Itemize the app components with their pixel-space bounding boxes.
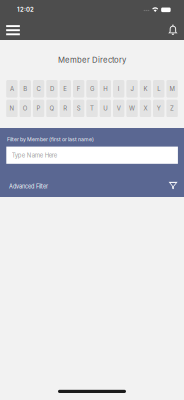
staticText: D [50, 85, 54, 92]
button[interactable]: E [60, 80, 71, 98]
button[interactable]: J [126, 80, 138, 98]
staticText: M [170, 85, 175, 92]
button[interactable]: I [113, 80, 124, 98]
staticText: X [143, 105, 147, 112]
staticText: Advanced Filter [9, 183, 48, 190]
button[interactable]: R [60, 100, 71, 117]
staticText: V [117, 105, 121, 112]
button[interactable]: Y [153, 100, 164, 117]
button[interactable]: Notifications [164, 21, 182, 39]
button[interactable]: O [19, 100, 31, 117]
button[interactable]: F [73, 80, 84, 98]
staticText: G [90, 85, 94, 92]
button[interactable]: X [140, 100, 151, 117]
staticText: W [129, 105, 135, 112]
staticText: O [23, 105, 28, 112]
button[interactable]: U [100, 100, 111, 117]
button[interactable]: T [86, 100, 98, 117]
button[interactable]: D [46, 80, 58, 98]
staticText: T [90, 105, 94, 112]
button[interactable]: L [153, 80, 164, 98]
staticText: R [63, 105, 67, 112]
staticText: H [103, 85, 107, 92]
staticText: K [143, 85, 147, 92]
staticText: L [157, 85, 160, 92]
staticText: 12:02 [17, 6, 34, 13]
staticText: N [9, 105, 14, 112]
staticText: A [10, 85, 14, 92]
staticText: Q [49, 105, 54, 112]
button[interactable]: A [6, 80, 18, 98]
staticText: C [37, 85, 41, 92]
button[interactable]: G [86, 80, 98, 98]
button[interactable]: C [33, 80, 44, 98]
staticText: F [77, 85, 81, 92]
button[interactable]: Menu [2, 21, 24, 39]
staticText: P [37, 105, 41, 112]
staticText: Filter by Member (first or last name) [7, 136, 94, 142]
button[interactable]: N [6, 100, 18, 117]
button[interactable]: W [126, 100, 138, 117]
staticText: S [77, 105, 81, 112]
staticText: U [103, 105, 107, 112]
button[interactable]: Z [166, 100, 178, 117]
staticText: B [23, 85, 27, 92]
button[interactable]: B [19, 80, 31, 98]
staticText: I [118, 85, 120, 92]
button[interactable]: V [113, 100, 124, 117]
button[interactable]: H [100, 80, 111, 98]
staticText: Y [157, 105, 161, 112]
button[interactable]: Filter options [166, 179, 180, 193]
staticText: Z [170, 105, 174, 112]
staticText: J [130, 85, 133, 92]
button[interactable]: P [33, 100, 44, 117]
staticText: Type Name Here [12, 152, 57, 159]
button[interactable]: K [140, 80, 151, 98]
staticText: Member Directory [58, 55, 126, 65]
button[interactable]: Q [46, 100, 58, 117]
staticText: E [63, 85, 67, 92]
button[interactable]: M [166, 80, 178, 98]
button[interactable]: Advanced Filter [6, 179, 50, 193]
button[interactable]: S [73, 100, 84, 117]
